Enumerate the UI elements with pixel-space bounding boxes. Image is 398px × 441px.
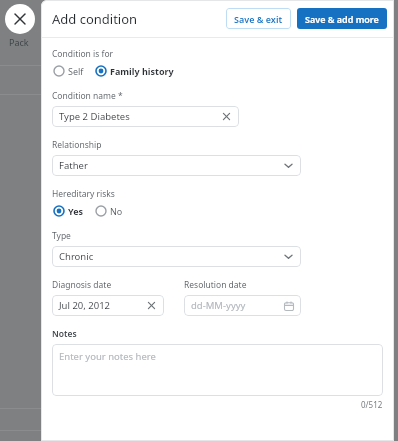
staticText: Yes — [68, 205, 84, 217]
staticText: Type 2 Diabetes — [59, 110, 130, 123]
staticText: Self — [68, 65, 84, 77]
button[interactable]: Save & add more — [297, 8, 387, 29]
staticText: Father — [59, 159, 88, 172]
button[interactable]: dd-MM-yyyy — [184, 295, 301, 316]
staticText: Save & add more — [305, 13, 379, 25]
staticText: 0/512 — [361, 399, 383, 410]
button[interactable]: Yes — [52, 204, 85, 218]
staticText: Pack — [9, 36, 29, 48]
staticText: Enter your notes here — [59, 350, 156, 363]
staticText: Chronic — [59, 250, 94, 263]
staticText: Type — [52, 230, 71, 242]
button[interactable]: Jul 20, 2012 — [52, 295, 164, 316]
staticText: Save & exit — [234, 13, 283, 25]
staticText: Add condition — [52, 10, 138, 28]
staticText: Hereditary risks — [52, 188, 115, 200]
button[interactable]: Type 2 Diabetes — [52, 106, 239, 127]
button[interactable]: Close — [5, 4, 35, 34]
staticText: Resolution date — [184, 279, 247, 291]
button[interactable]: Save & exit — [226, 8, 291, 29]
staticText: Diagnosis date — [52, 279, 112, 291]
button[interactable]: Father — [52, 155, 301, 176]
staticText: Family history — [110, 65, 174, 77]
staticText: dd-MM-yyyy — [191, 299, 246, 312]
staticText: Jul 20, 2012 — [59, 299, 111, 312]
staticText: Condition name * — [52, 90, 123, 102]
button[interactable]: Chronic — [52, 246, 301, 267]
button[interactable]: Enter your notes here — [52, 344, 383, 396]
button[interactable]: Self — [52, 64, 85, 78]
staticText: No — [110, 205, 123, 217]
button[interactable]: Family history — [94, 64, 175, 78]
staticText: Condition is for — [52, 48, 114, 60]
button[interactable]: No — [94, 204, 124, 218]
staticText: Relationship — [52, 139, 102, 151]
staticText: Notes — [52, 328, 77, 340]
